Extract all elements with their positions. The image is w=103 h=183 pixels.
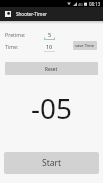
staticText: Reset: [45, 66, 58, 72]
staticText: Shooter-Timer: [16, 11, 47, 17]
staticText: 5: [48, 31, 52, 38]
staticText: Pretime:: [5, 31, 26, 38]
staticText: Start: [42, 157, 62, 169]
staticText: -05: [31, 89, 73, 127]
staticText: 10: [46, 43, 53, 50]
button[interactable]: Reset: [5, 62, 98, 75]
staticText: save Time: [75, 43, 95, 48]
staticText: Time:: [5, 43, 19, 50]
button[interactable]: Start: [4, 152, 99, 174]
staticText: 4G: [78, 2, 83, 7]
button[interactable]: save Time: [73, 41, 97, 50]
staticText: 08:13: [89, 1, 101, 7]
